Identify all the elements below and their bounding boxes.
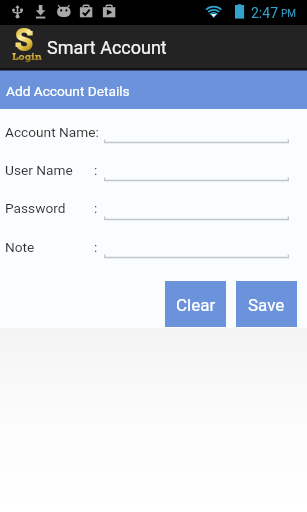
button[interactable]: Password — [104, 199, 289, 221]
staticText: Clear — [176, 295, 216, 315]
staticText: : — [94, 200, 98, 216]
button[interactable]: Save — [236, 281, 297, 327]
button[interactable]: Account Name: — [104, 122, 289, 144]
button[interactable]: Clear — [165, 281, 226, 327]
staticText: PM — [281, 8, 297, 20]
button[interactable]: Smart Account logo — [10, 29, 44, 69]
staticText: 2:47 — [251, 5, 278, 21]
button[interactable]: Note — [104, 237, 289, 259]
staticText: : — [94, 162, 98, 178]
staticText: Add Account Details — [6, 83, 130, 99]
staticText: S — [15, 22, 34, 58]
staticText: Account Name: — [5, 124, 99, 140]
staticText: User Name — [5, 162, 73, 178]
staticText: Smart Account — [47, 37, 167, 58]
staticText: : — [94, 239, 98, 255]
staticText: Note — [5, 239, 35, 255]
staticText: Login — [12, 50, 42, 62]
staticText: Save — [248, 295, 285, 315]
button[interactable]: User Name — [104, 160, 289, 182]
staticText: Password — [5, 200, 66, 216]
